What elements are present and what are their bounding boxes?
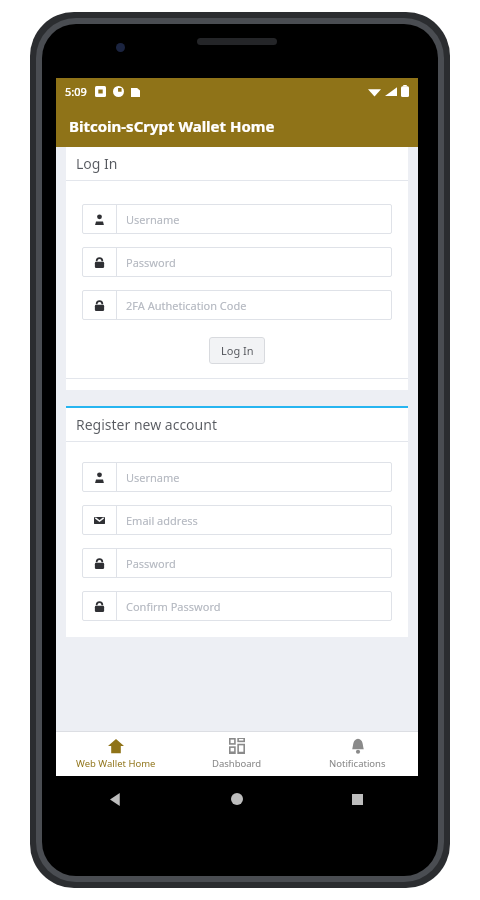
other: Back [110,793,123,806]
button[interactable]: Username [82,204,392,234]
staticText: Username [126,212,180,227]
staticText: Email address [126,513,198,528]
staticText: 2FA Authetication Code [126,298,247,313]
button[interactable]: Password [82,548,392,578]
button[interactable]: Username [82,462,392,492]
staticText: Password [126,255,176,270]
button[interactable]: Confirm Password [82,591,392,621]
staticText: Password [126,556,176,571]
button[interactable]: Notifications [297,732,418,776]
button[interactable]: Log In [209,337,265,364]
staticText: Log In [76,154,118,173]
button[interactable]: Email address [82,505,392,535]
staticText: Dashboard [212,757,262,770]
button[interactable]: Web Wallet Home [56,732,176,776]
button[interactable]: 2FA Authetication Code [82,290,392,320]
staticText: Log In [221,343,254,358]
staticText: 5:09 [65,84,87,99]
staticText: Username [126,470,180,485]
other: Home [231,793,243,805]
button[interactable]: Password [82,247,392,277]
staticText: Web Wallet Home [76,757,156,770]
staticText: Bitcoin-sCrypt Wallet Home [69,116,275,136]
staticText: Confirm Password [126,599,221,614]
staticText: Notifications [329,757,386,770]
staticText: Register new account [76,415,217,434]
button[interactable]: Dashboard [176,732,297,776]
